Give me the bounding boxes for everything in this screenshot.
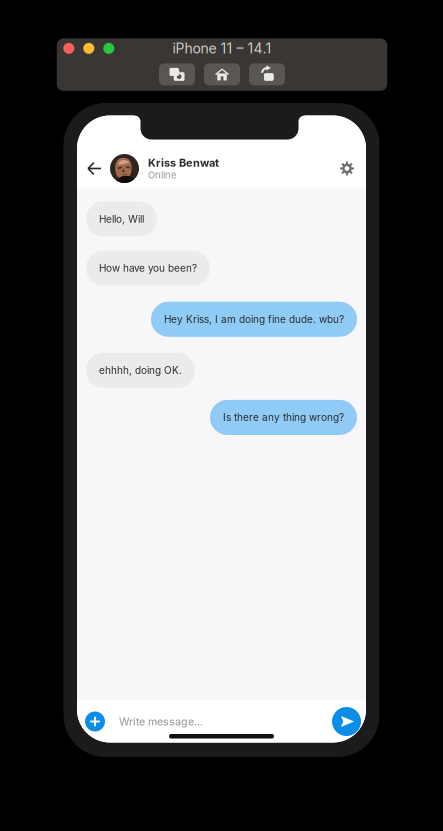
staticText: Write message... — [119, 715, 203, 728]
staticText: How have you been? — [99, 262, 197, 274]
button[interactable]: Rotate — [249, 63, 285, 85]
staticText: Kriss Benwat — [148, 156, 219, 169]
button[interactable]: Screenshot — [159, 63, 195, 85]
button[interactable]: Send — [332, 707, 361, 736]
staticText: Hey Kriss, I am doing fine dude. wbu? — [164, 313, 344, 325]
staticText: iPhone 11 – 14.1 — [173, 40, 272, 57]
staticText: Online — [148, 169, 176, 181]
button[interactable]: Back — [82, 155, 107, 181]
button[interactable]: Add attachment — [85, 711, 105, 731]
staticText: ehhhh, doing OK. — [99, 364, 182, 376]
staticText: Is there any thing wrong? — [223, 411, 344, 423]
staticText: Hello, Will — [99, 213, 144, 225]
button[interactable]: Settings — [335, 156, 359, 180]
button[interactable]: Home — [204, 63, 240, 85]
